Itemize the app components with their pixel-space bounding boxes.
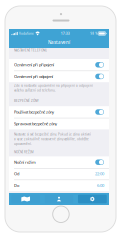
button[interactable]: Do: [9, 180, 109, 191]
staticText: 98 %: [90, 31, 97, 35]
button[interactable]: Profil: [42, 193, 76, 205]
staticText: Oznámení při odpojení: [14, 74, 53, 79]
staticText: NOČNÍ REŽIM: [14, 150, 34, 154]
staticText: Zde si nastavíte upozornění na připojení…: [14, 83, 93, 87]
staticText: 17:33: [61, 31, 70, 36]
button[interactable]: Nastavení: [76, 193, 109, 205]
staticText: Noční režim: [14, 159, 36, 165]
staticText: Nastavte si své bezpečné zóny. Pokud je …: [14, 132, 91, 136]
staticText: Spravovat bezpečné zóny: [14, 121, 57, 126]
button[interactable]: Spravovat bezpečné zóny: [9, 118, 109, 129]
staticText: upozornění.: [14, 142, 32, 146]
staticText: a vy se z aktuálně nastavené zóny vzdálí…: [14, 137, 89, 141]
staticText: vašeho zařízení od telefonu.: [14, 88, 56, 92]
staticText: Do: [14, 183, 19, 188]
staticText: Oznámení při připojení: [14, 62, 54, 67]
button[interactable]: Od: [9, 168, 109, 180]
button[interactable]: Oznámení při odpojení: [9, 71, 109, 82]
staticText: BEZPEČNÉ ZÓNY: [14, 99, 39, 103]
staticText: 6:00: [97, 183, 104, 188]
button[interactable]: Používat bezpečné zóny: [9, 106, 109, 118]
staticText: Používat bezpečné zóny: [14, 109, 54, 115]
staticText: NASTAVENÍ TELEFONU: [14, 48, 47, 52]
button[interactable]: Noční režim: [9, 156, 109, 168]
button[interactable]: Mapa: [9, 193, 42, 205]
button[interactable]: Oznámení při připojení: [9, 59, 109, 71]
staticText: Od: [14, 171, 19, 176]
staticText: Nastavení: [48, 39, 70, 45]
staticText: 22:00: [95, 171, 104, 176]
staticText: Vodafone: [19, 31, 34, 35]
